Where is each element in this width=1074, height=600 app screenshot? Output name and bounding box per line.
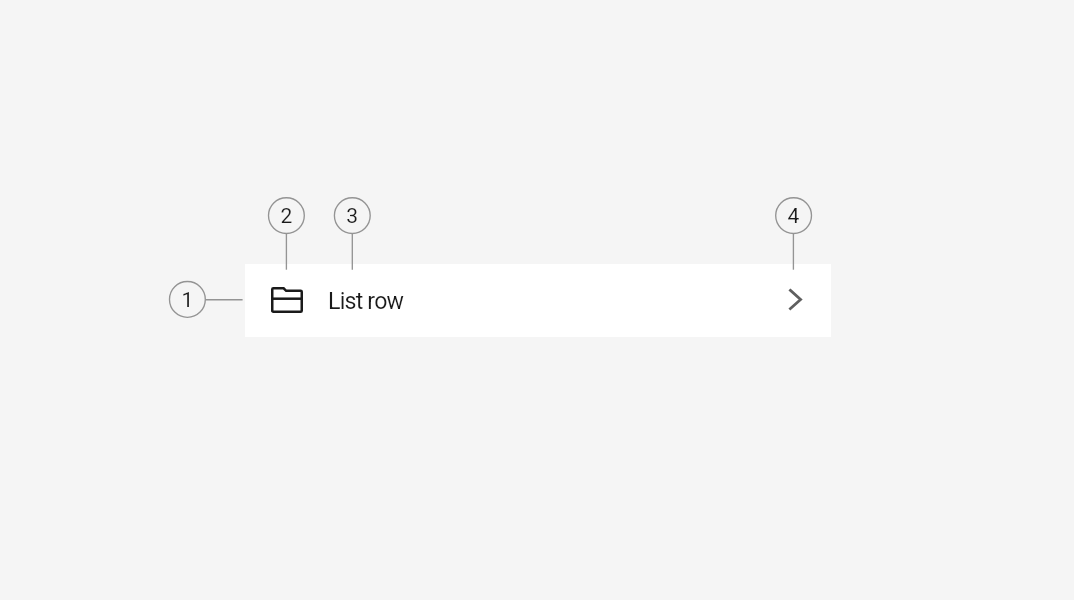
other: Folder	[271, 287, 303, 313]
button[interactable]: Folder	[245, 264, 831, 337]
staticText: List row	[328, 287, 404, 314]
button[interactable]: Open	[789, 289, 802, 310]
